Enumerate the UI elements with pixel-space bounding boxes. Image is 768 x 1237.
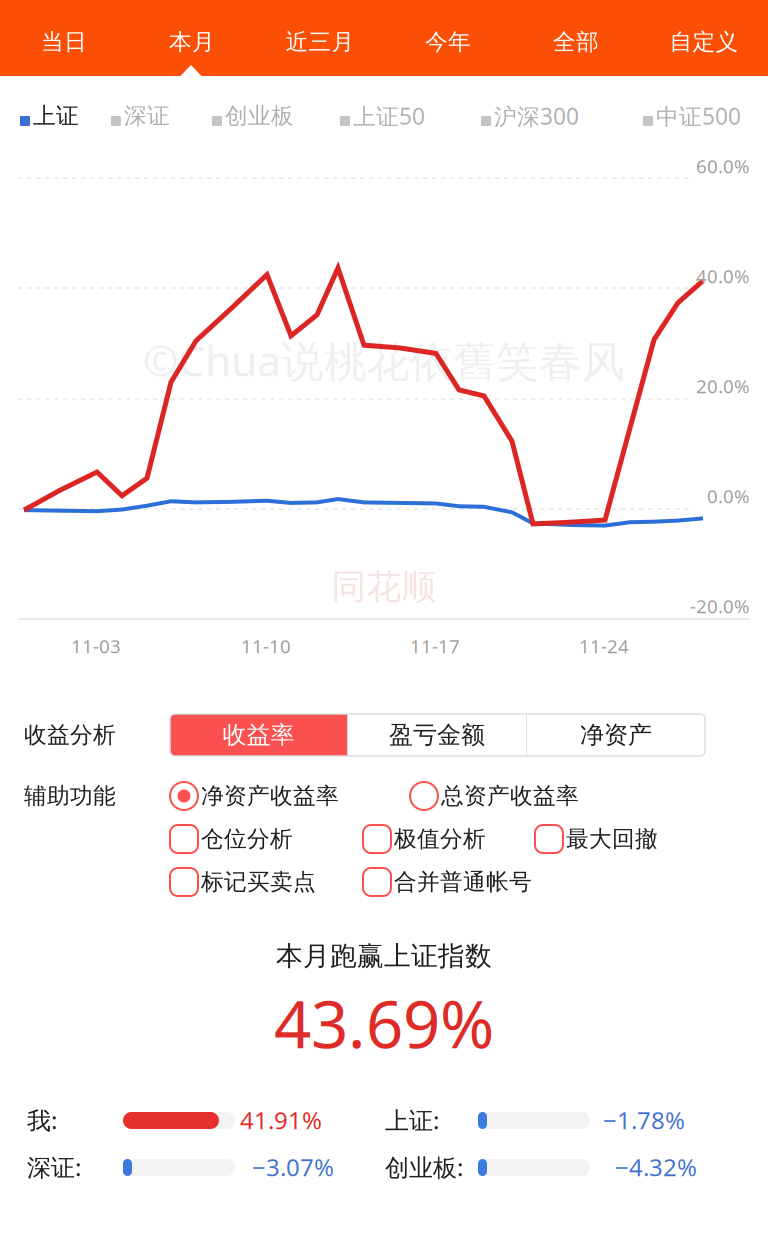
staticText: 最大回撤 [566, 825, 658, 853]
staticText: 40.0% [696, 264, 750, 288]
staticText: 11-17 [410, 634, 460, 658]
staticText: 近三月 [285, 28, 354, 56]
button[interactable]: 合并普通帐号 [363, 868, 532, 896]
staticText: 上证: [385, 1104, 439, 1136]
staticText: 43.69% [274, 980, 494, 1066]
staticText: 20.0% [696, 374, 750, 398]
staticText: 收益率 [222, 720, 294, 750]
button[interactable]: 上证50 [340, 98, 500, 134]
button[interactable]: 收益率 [170, 714, 347, 756]
button[interactable]: 极值分析 [363, 825, 486, 853]
staticText: 自定义 [669, 28, 738, 56]
staticText: 41.91% [240, 1104, 322, 1136]
button[interactable]: 全部 [512, 0, 640, 76]
button[interactable]: 最大回撤 [535, 825, 658, 853]
staticText: 收益分析 [24, 721, 116, 749]
staticText: 合并普通帐号 [394, 868, 532, 896]
staticText: 全部 [553, 28, 599, 56]
button[interactable]: 创业板 [212, 98, 372, 134]
staticText: 净资产收益率 [201, 782, 339, 810]
button[interactable]: 中证500 [643, 98, 768, 134]
staticText: 创业板 [225, 102, 294, 130]
staticText: 11-03 [71, 634, 121, 658]
button[interactable]: 净资产收益率 [170, 782, 339, 810]
staticText: 沪深300 [494, 101, 579, 131]
staticText: 60.0% [696, 154, 750, 178]
staticText: 深证: [27, 1151, 81, 1183]
staticText: 上证50 [353, 101, 425, 131]
button[interactable]: 仓位分析 [170, 825, 293, 853]
staticText: 11-10 [241, 634, 291, 658]
staticText: 上证 [33, 102, 79, 130]
button[interactable]: 标记买卖点 [170, 868, 316, 896]
button[interactable]: 今年 [384, 0, 512, 76]
staticText: 同花顺 [331, 566, 436, 608]
button[interactable]: 总资产收益率 [410, 782, 579, 810]
button[interactable]: 当日 [0, 0, 128, 76]
button[interactable]: 自定义 [640, 0, 768, 76]
staticText: 今年 [425, 28, 471, 56]
staticText: −1.78% [603, 1104, 685, 1136]
staticText: ©Chua说桃花依舊笑春风 [143, 332, 625, 388]
staticText: 辅助功能 [24, 782, 116, 810]
button[interactable]: 本月 [128, 0, 256, 76]
button[interactable]: 盈亏金额 [348, 714, 526, 756]
staticText: 极值分析 [394, 825, 486, 853]
staticText: 深证 [124, 102, 170, 130]
button[interactable]: 净资产 [527, 714, 705, 756]
staticText: 0.0% [707, 484, 750, 508]
staticText: −3.07% [252, 1151, 334, 1183]
staticText: 仓位分析 [201, 825, 293, 853]
staticText: 中证500 [656, 101, 741, 131]
staticText: 我: [27, 1104, 57, 1136]
staticText: 11-24 [579, 634, 629, 658]
staticText: 标记买卖点 [201, 868, 316, 896]
button[interactable]: 深证 [111, 98, 271, 134]
button[interactable]: 近三月 [256, 0, 384, 76]
staticText: 净资产 [580, 720, 652, 750]
staticText: 当日 [41, 28, 87, 56]
button[interactable]: 沪深300 [481, 98, 641, 134]
staticText: 本月 [169, 28, 215, 56]
staticText: 总资产收益率 [441, 782, 579, 810]
staticText: 本月跑赢上证指数 [276, 940, 492, 972]
staticText: 盈亏金额 [389, 720, 485, 750]
staticText: −4.32% [615, 1151, 697, 1183]
button[interactable]: 上证 [20, 98, 180, 134]
staticText: 创业板: [385, 1151, 463, 1183]
staticText: -20.0% [690, 594, 750, 618]
